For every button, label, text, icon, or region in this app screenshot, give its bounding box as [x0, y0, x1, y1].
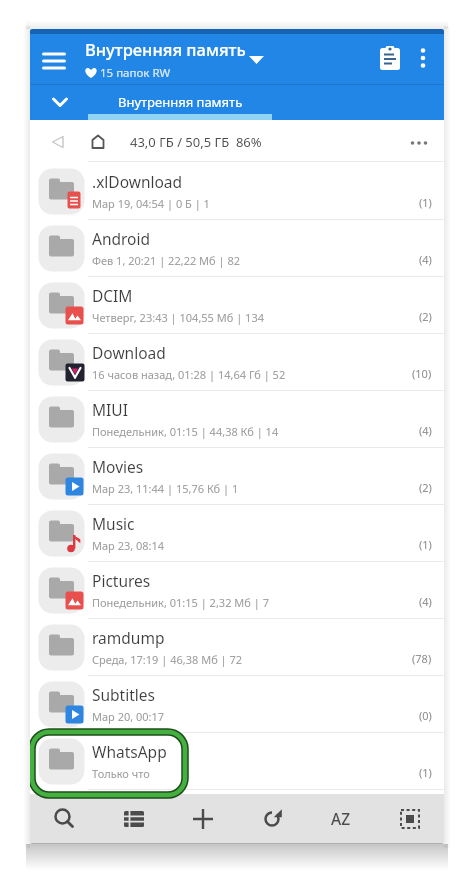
button[interactable]: [168, 794, 237, 843]
staticText: (4): [419, 252, 432, 267]
button[interactable]: MIUI: [30, 391, 444, 448]
staticText: (4): [419, 594, 432, 609]
button[interactable]: Subtitles: [30, 676, 444, 733]
staticText: Мар 20, 00:17: [92, 709, 165, 724]
staticText: (2): [419, 480, 432, 495]
staticText: (4): [419, 423, 432, 438]
button[interactable]: Download: [30, 334, 444, 391]
staticText: Четверг, 23:43 | 104,55 Мб | 134: [92, 310, 264, 325]
button[interactable]: [375, 794, 444, 843]
button[interactable]: [237, 794, 306, 843]
button[interactable]: [99, 794, 168, 843]
staticText: ramdump: [92, 627, 165, 648]
staticText: Фев 1, 20:21 | 22,22 Мб | 82: [92, 253, 240, 268]
button[interactable]: Android: [30, 220, 444, 277]
staticText: Movies: [92, 456, 144, 477]
staticText: AZ: [331, 808, 351, 829]
staticText: Мар 23, 11:44 | 15,76 Кб | 1: [92, 481, 239, 496]
staticText: (1): [419, 765, 432, 780]
staticText: (2): [419, 309, 432, 324]
staticText: Pictures: [92, 570, 151, 591]
button[interactable]: Внутренняя память: [88, 84, 272, 120]
staticText: Мар 19, 04:54 | 0 Б | 1: [92, 196, 210, 211]
button[interactable]: AZ: [306, 794, 375, 843]
staticText: (10): [412, 366, 432, 381]
button[interactable]: [402, 126, 436, 160]
button[interactable]: Movies: [30, 448, 444, 505]
staticText: Внутренняя память: [118, 93, 243, 111]
staticText: Среда, 17:19 | 46,38 Мб | 72: [92, 652, 243, 667]
staticText: Только что: [92, 766, 150, 781]
button[interactable]: [42, 126, 74, 158]
button[interactable]: .xlDownload: [30, 163, 444, 220]
button[interactable]: [374, 43, 406, 75]
staticText: (1): [419, 195, 432, 210]
staticText: Download: [92, 342, 166, 363]
staticText: DCIM: [92, 285, 133, 306]
staticText: Внутренняя память: [85, 38, 246, 60]
button[interactable]: ramdump: [30, 619, 444, 676]
button[interactable]: [30, 794, 99, 843]
staticText: Android: [92, 228, 151, 249]
staticText: Subtitles: [92, 684, 155, 705]
staticText: (1): [419, 537, 432, 552]
button[interactable]: Внутренняя память: [85, 38, 246, 60]
button[interactable]: WhatsApp: [30, 733, 444, 790]
staticText: (0): [419, 708, 432, 723]
staticText: (78): [412, 651, 432, 666]
staticText: 15 папок RW: [100, 65, 171, 81]
staticText: Понедельник, 01:15 | 44,38 Кб | 14: [92, 424, 279, 439]
staticText: Music: [92, 513, 135, 534]
staticText: Понедельник, 01:15 | 2,32 Мб | 7: [92, 595, 269, 610]
button[interactable]: Pictures: [30, 562, 444, 619]
button[interactable]: [38, 45, 70, 77]
staticText: Мар 23, 08:14: [92, 538, 165, 553]
staticText: 43,0 ГБ / 50,5 ГБ 86%: [130, 133, 262, 151]
button[interactable]: [406, 43, 436, 73]
staticText: WhatsApp: [92, 741, 167, 762]
button[interactable]: DCIM: [30, 277, 444, 334]
staticText: .xlDownload: [92, 171, 183, 192]
button[interactable]: Music: [30, 505, 444, 562]
staticText: MIUI: [92, 399, 128, 420]
button[interactable]: [82, 126, 114, 158]
staticText: 16 часов назад, 01:28 | 14,64 Гб | 52: [92, 367, 286, 382]
button[interactable]: [44, 86, 76, 118]
